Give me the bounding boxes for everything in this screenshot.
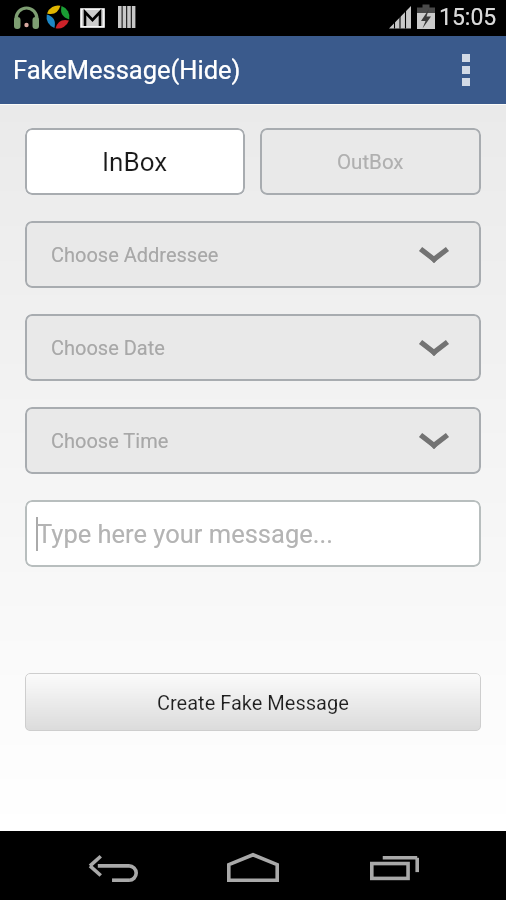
staticText: Create Fake Message [157, 691, 349, 714]
button[interactable]: Back [69, 831, 157, 900]
staticText: FakeMessage(Hide) [13, 55, 241, 85]
button[interactable]: Choose Date [25, 314, 481, 381]
staticText: 15:05 [439, 4, 497, 31]
button[interactable]: More options [452, 44, 480, 96]
staticText: Type here your message... [37, 519, 333, 549]
button[interactable]: Recent apps [350, 831, 438, 900]
button[interactable]: InBox [25, 128, 245, 195]
button[interactable]: OutBox [260, 128, 481, 195]
button[interactable]: Create Fake Message [25, 673, 481, 731]
staticText: InBox [102, 147, 168, 177]
button[interactable]: Choose Addressee [25, 221, 481, 288]
staticText: Choose Addressee [51, 243, 219, 266]
staticText: OutBox [337, 150, 404, 174]
staticText: Choose Time [51, 429, 169, 452]
button[interactable]: Type here your message... [25, 500, 481, 567]
staticText: Choose Date [51, 336, 165, 359]
button[interactable]: Choose Time [25, 407, 481, 474]
button[interactable]: Home [209, 831, 297, 900]
